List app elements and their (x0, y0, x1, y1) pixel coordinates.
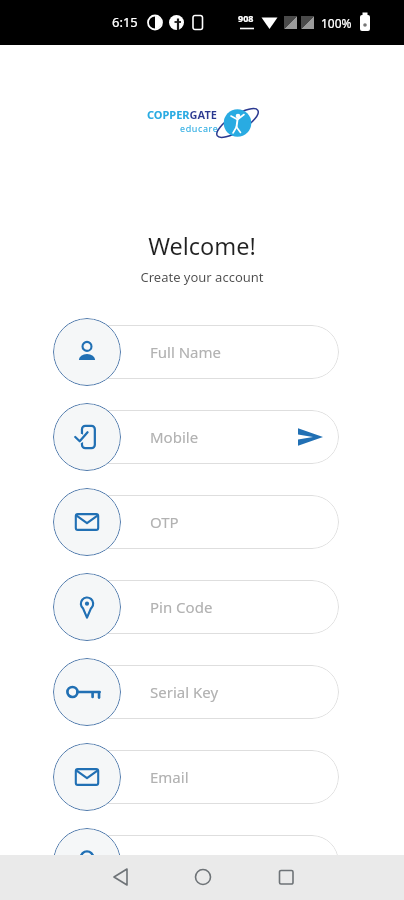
button[interactable] (53, 573, 121, 641)
staticText: OTP (150, 512, 179, 532)
button[interactable] (53, 403, 121, 471)
button[interactable]: Email (60, 750, 339, 804)
button[interactable]: OTP (60, 495, 339, 549)
button[interactable] (53, 658, 121, 726)
staticText: Create your account (0, 268, 404, 286)
button[interactable] (53, 828, 121, 896)
button[interactable] (298, 427, 323, 447)
button[interactable] (186, 860, 220, 894)
staticText: 6:15 (112, 13, 138, 31)
staticText: COPPERGATE (147, 107, 217, 122)
button[interactable] (269, 860, 303, 894)
button[interactable] (53, 488, 121, 556)
staticText: Email (150, 767, 189, 787)
staticText: educare (180, 122, 219, 134)
button[interactable]: Serial Key (60, 665, 339, 719)
staticText: Mobile (150, 427, 199, 447)
staticText: Welcome! (0, 230, 404, 262)
staticText: Pin Code (150, 597, 213, 617)
button[interactable] (103, 860, 137, 894)
button[interactable]: Pin Code (60, 580, 339, 634)
staticText: Full Name (150, 342, 221, 362)
staticText: Serial Key (150, 682, 219, 702)
staticText: 908 (238, 12, 254, 24)
button[interactable]: Mobile (60, 410, 339, 464)
button[interactable] (60, 835, 339, 889)
button[interactable] (53, 743, 121, 811)
staticText: 100% (321, 15, 352, 31)
button[interactable] (53, 318, 121, 386)
button[interactable]: Full Name (60, 325, 339, 379)
